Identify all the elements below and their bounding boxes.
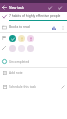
staticText: New task (9, 5, 24, 10)
button[interactable]: Save task (55, 3, 64, 12)
button[interactable]: Priority colour (18, 45, 25, 52)
button[interactable]: Back (0, 3, 9, 12)
button[interactable]: Schedule this task (0, 81, 67, 92)
button[interactable]: Uncompleted (0, 56, 67, 67)
button[interactable]: More options (58, 23, 67, 32)
button[interactable]: Priority colour (9, 35, 16, 42)
button[interactable]: Priority colour (9, 45, 16, 52)
staticText: Schedule this task (9, 85, 36, 89)
staticText: Add note (9, 71, 23, 75)
button[interactable]: Priority colour (27, 45, 34, 52)
button[interactable]: Priority colour (27, 35, 34, 42)
staticText: Books to read (9, 25, 30, 29)
button[interactable]: Books to read (0, 22, 67, 32)
button[interactable]: Priority colour (18, 35, 25, 42)
button[interactable]: Mark complete (45, 3, 54, 12)
button[interactable]: Add note (0, 67, 67, 78)
staticText: Uncompleted (9, 60, 30, 64)
button[interactable]: Statistics (49, 23, 58, 32)
button[interactable]: Edit (58, 82, 67, 91)
staticText: 7 habits of highly effective people (9, 14, 61, 18)
